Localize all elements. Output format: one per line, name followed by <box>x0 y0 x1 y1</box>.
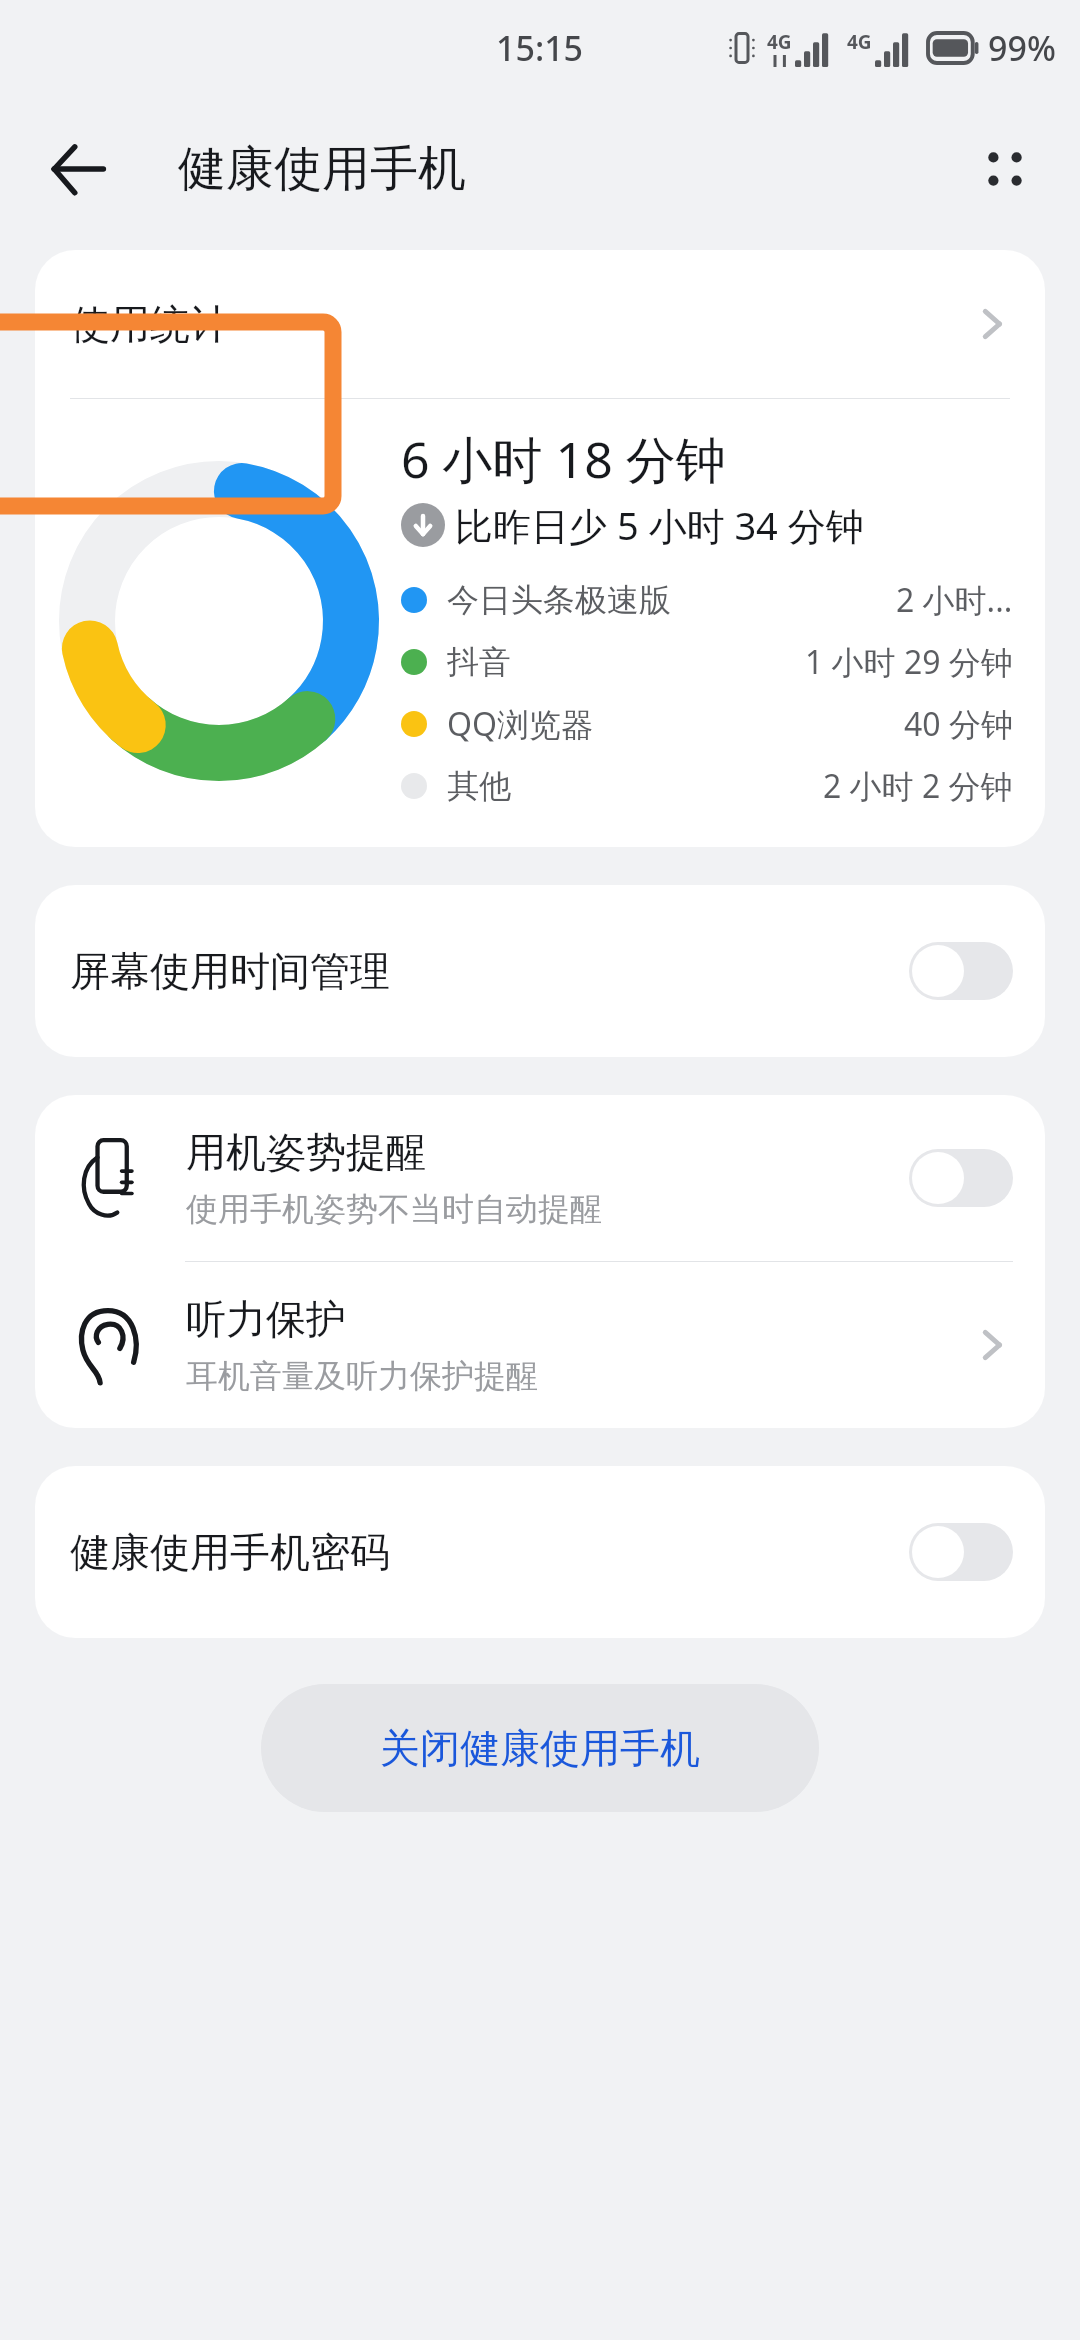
button[interactable]: More options <box>960 124 1050 214</box>
button[interactable]: 关闭健康使用手机 <box>261 1684 819 1812</box>
staticText: 4G <box>767 29 792 55</box>
staticText: 比昨日少 5 小时 34 分钟 <box>455 499 864 551</box>
staticText: QQ浏览器 <box>447 702 593 746</box>
staticText: 2 小时 2 分钟 <box>823 764 1013 808</box>
staticText: 抖音 <box>447 642 511 682</box>
staticText: 健康使用手机 <box>178 139 466 199</box>
button[interactable]: 健康使用手机密码 <box>35 1466 1045 1638</box>
staticText: 其他 <box>447 766 511 806</box>
button[interactable]: Toggle <box>909 942 1013 1000</box>
staticText: 关闭健康使用手机 <box>380 1723 700 1773</box>
button[interactable]: 屏幕使用时间管理 <box>35 885 1045 1057</box>
staticText: 15:15 <box>496 25 584 71</box>
button[interactable]: 听力保护 <box>35 1262 1045 1428</box>
staticText: 耳机音量及听力保护提醒 <box>186 1356 538 1396</box>
button[interactable]: Toggle <box>909 1149 1013 1207</box>
button[interactable]: Back <box>36 127 120 211</box>
staticText: 99% <box>988 25 1056 71</box>
button[interactable]: Toggle <box>909 1523 1013 1581</box>
staticText: 40 分钟 <box>904 702 1013 746</box>
staticText: 4G <box>847 29 872 55</box>
staticText: 健康使用手机密码 <box>70 1527 390 1577</box>
button[interactable]: 使用统计 <box>35 250 1045 398</box>
staticText: 6 小时 18 分钟 <box>401 425 726 493</box>
staticText: 屏幕使用时间管理 <box>70 946 390 996</box>
staticText: 使用统计 <box>70 299 230 349</box>
staticText: 使用手机姿势不当时自动提醒 <box>186 1189 602 1229</box>
staticText: 用机姿势提醒 <box>186 1127 426 1177</box>
staticText: 今日头条极速版 <box>447 580 671 620</box>
staticText: 听力保护 <box>186 1294 346 1344</box>
staticText: 1 小时 29 分钟 <box>805 640 1013 684</box>
button[interactable]: 用机姿势提醒 <box>35 1095 1045 1261</box>
staticText: 2 小时... <box>896 578 1013 622</box>
